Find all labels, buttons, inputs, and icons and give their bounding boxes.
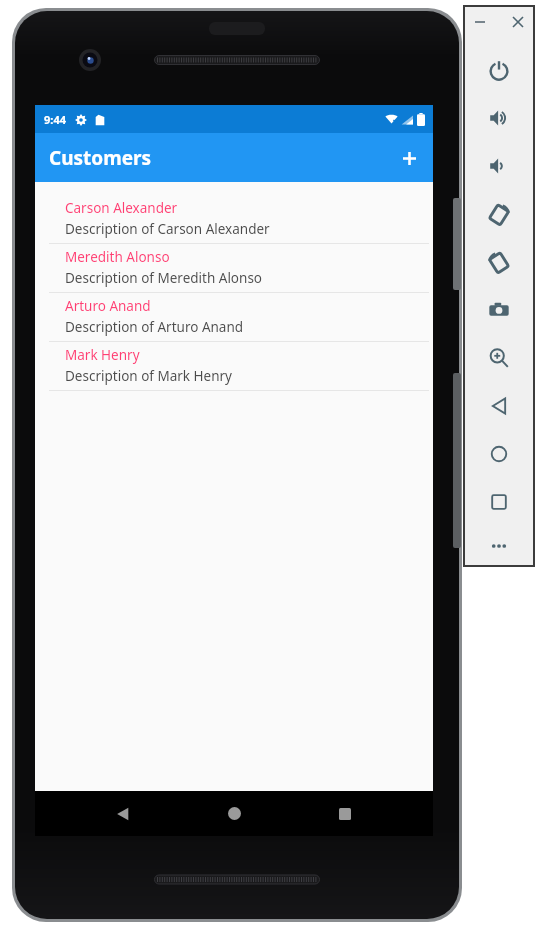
button[interactable]: Mark Henry: [35, 346, 433, 395]
button[interactable]: More: [464, 526, 534, 566]
button[interactable]: Rotate left: [464, 190, 534, 238]
button[interactable]: Back: [100, 791, 146, 836]
button[interactable]: Carson Alexander: [35, 199, 433, 248]
staticText: Description of Arturo Anand: [65, 318, 244, 336]
button[interactable]: Add customer: [391, 140, 427, 176]
staticText: Arturo Anand: [65, 297, 151, 315]
button[interactable]: Home: [211, 791, 257, 836]
button[interactable]: Back: [464, 382, 534, 430]
button[interactable]: Volume down: [464, 142, 534, 190]
button[interactable]: Meredith Alonso: [35, 248, 433, 297]
staticText: Description of Carson Alexander: [65, 220, 270, 238]
button[interactable]: Home: [464, 430, 534, 478]
staticText: Description of Mark Henry: [65, 367, 233, 385]
staticText: Customers: [49, 145, 152, 171]
button[interactable]: Rotate right: [464, 238, 534, 286]
button[interactable]: Overview: [464, 478, 534, 526]
staticText: Meredith Alonso: [65, 248, 170, 266]
button[interactable]: Recent apps: [322, 791, 368, 836]
button[interactable]: Zoom: [464, 334, 534, 382]
button[interactable]: Minimize: [469, 11, 491, 33]
button[interactable]: Volume up: [464, 94, 534, 142]
staticText: Description of Meredith Alonso: [65, 269, 263, 287]
staticText: Mark Henry: [65, 346, 140, 364]
button[interactable]: Close: [507, 11, 529, 33]
button[interactable]: Take screenshot: [464, 286, 534, 334]
staticText: Carson Alexander: [65, 199, 178, 217]
staticText: 9:44: [44, 112, 66, 127]
button[interactable]: Arturo Anand: [35, 297, 433, 346]
button[interactable]: Power: [464, 46, 534, 94]
